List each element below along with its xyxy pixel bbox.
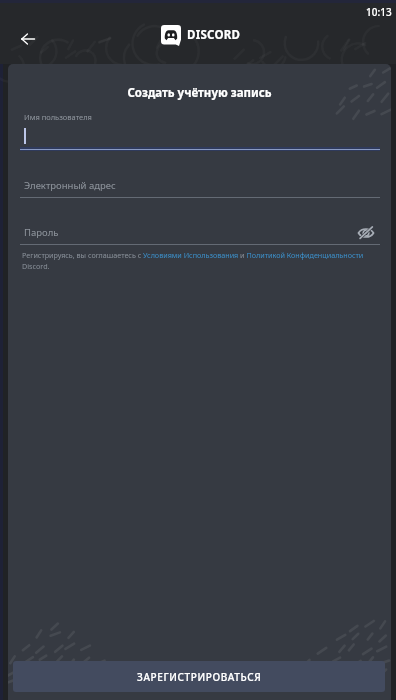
staticText: Имя пользователя [24,112,92,122]
staticText: Создать учётную запись [8,85,391,101]
staticText: Пароль [24,226,59,239]
staticText: DISCORD [187,27,241,43]
staticText: 10:13 [366,5,392,19]
staticText: Регистрируясь, вы соглашаетесь с Условия… [22,250,391,271]
staticText: ЗАРЕГИСТРИРОВАТЬСЯ [137,670,262,684]
button[interactable]: Show password [356,223,376,243]
button[interactable]: Back [13,24,43,54]
button[interactable]: ЗАРЕГИСТРИРОВАТЬСЯ [13,661,385,692]
staticText: Электронный адрес [24,179,116,192]
